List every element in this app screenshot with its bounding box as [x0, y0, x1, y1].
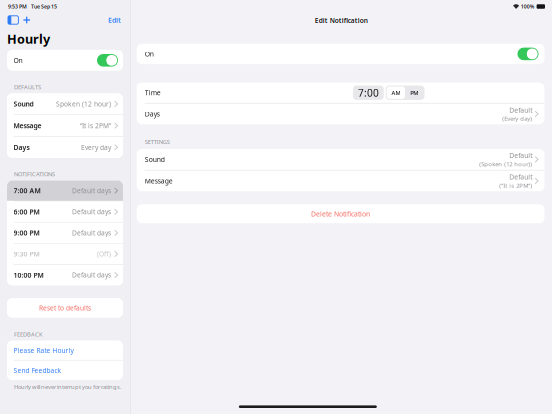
- staticText: Reset to defaults: [39, 303, 91, 312]
- button[interactable]: Add Notification: [20, 14, 33, 26]
- staticText: NOTIFICATIONS: [14, 170, 55, 178]
- staticText: Message: [13, 121, 41, 130]
- button[interactable]: Delete Notification: [131, 204, 552, 223]
- staticText: Default days: [72, 207, 111, 216]
- staticText: Message: [145, 176, 173, 185]
- staticText: 7:00: [358, 86, 379, 99]
- staticText: 9:53 PM: [8, 3, 27, 10]
- button[interactable]: On: [137, 44, 544, 64]
- staticText: SETTINGS: [145, 138, 170, 145]
- button[interactable]: On: [7, 50, 123, 71]
- staticText: 9:30 PM: [13, 249, 39, 258]
- staticText: AM: [391, 89, 400, 96]
- staticText: Every day: [81, 143, 111, 152]
- button[interactable]: Message: [137, 170, 544, 191]
- button[interactable]: Toggle Sidebar: [6, 13, 20, 27]
- button[interactable]: Sound: [137, 149, 544, 170]
- button[interactable]: Time: [137, 83, 544, 103]
- staticText: Hourly will never interrupt you for rati…: [14, 383, 122, 391]
- staticText: Delete Notification: [311, 209, 370, 218]
- button[interactable]: Send Feedback: [7, 361, 123, 380]
- staticText: Time: [145, 88, 161, 97]
- button[interactable]: Edit: [105, 13, 124, 27]
- staticText: On: [145, 49, 154, 58]
- staticText: PM: [410, 89, 418, 96]
- button[interactable]: 7:00 AM: [7, 180, 123, 201]
- staticText: (Every day): [502, 115, 532, 122]
- button[interactable]: 6:00 PM: [7, 202, 123, 222]
- staticText: DEFAULTS: [14, 83, 41, 91]
- staticText: Edit Notification: [315, 16, 368, 25]
- button[interactable]: Days: [137, 104, 544, 124]
- staticText: Sound: [13, 99, 33, 108]
- staticText: Send Feedback: [13, 366, 61, 375]
- staticText: Default days: [72, 186, 111, 195]
- button[interactable]: Please Rate Hourly: [7, 341, 123, 360]
- staticText: “It is 2PM”: [80, 121, 111, 130]
- button[interactable]: Message: [7, 115, 123, 136]
- staticText: (“It is 2PM”): [499, 181, 532, 189]
- staticText: Days: [13, 143, 29, 152]
- staticText: 9:00 PM: [13, 228, 39, 237]
- button[interactable]: 10:00 PM: [7, 265, 123, 285]
- staticText: Please Rate Hourly: [13, 346, 73, 355]
- staticText: Default days: [72, 228, 111, 237]
- staticText: Default: [509, 172, 532, 181]
- staticText: 7:00 AM: [13, 186, 40, 195]
- staticText: (Spoken (12 hour)): [479, 160, 532, 168]
- button[interactable]: Sound: [7, 93, 123, 114]
- staticText: Tue Sep 15: [31, 3, 57, 10]
- staticText: Sound: [145, 155, 165, 164]
- staticText: Default days: [72, 271, 111, 279]
- staticText: Spoken (12 hour): [56, 100, 111, 108]
- staticText: Days: [145, 109, 160, 118]
- staticText: On: [13, 56, 22, 65]
- staticText: 100%: [521, 3, 535, 10]
- button[interactable]: Days: [7, 137, 123, 158]
- button[interactable]: 9:30 PM: [7, 244, 123, 264]
- staticText: Default: [509, 151, 532, 160]
- staticText: 6:00 PM: [13, 207, 39, 216]
- button[interactable]: 9:00 PM: [7, 223, 123, 243]
- button[interactable]: Reset to defaults: [7, 298, 123, 318]
- staticText: Hourly: [7, 30, 50, 47]
- staticText: Edit: [108, 15, 121, 25]
- staticText: Default: [509, 106, 532, 115]
- staticText: (Off): [97, 250, 111, 258]
- staticText: 10:00 PM: [13, 270, 43, 279]
- staticText: FEEDBACK: [14, 331, 43, 338]
